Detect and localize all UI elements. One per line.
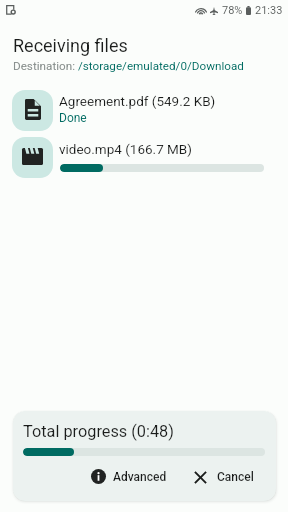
staticText: /storage/emulated/0/Download [78,59,244,73]
button[interactable]: Cancel [188,465,260,489]
staticText: Done [59,111,87,125]
staticText: Cancel [217,470,254,484]
staticText: Advanced [113,470,167,484]
staticText: Agreement.pdf (549.2 KB) [59,93,216,109]
button[interactable]: video.mp4 (166.7 MB) [0,137,288,179]
staticText: 78% [222,4,243,17]
staticText: Total progress (0:48) [23,422,174,441]
button[interactable]: Agreement.pdf (549.2 KB) [0,90,288,132]
other: Cancel [194,471,207,484]
staticText: Destination: [13,59,78,73]
staticText: Receiving files [13,35,128,56]
staticText: 21:33 [255,4,283,17]
button[interactable]: Advanced [85,464,173,489]
staticText: video.mp4 (166.7 MB) [59,141,192,157]
other: Download notification [6,5,15,14]
